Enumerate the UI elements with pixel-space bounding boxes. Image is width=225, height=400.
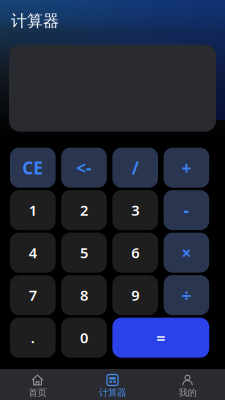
button[interactable]: 6 (112, 233, 158, 273)
button[interactable]: 3 (112, 190, 158, 230)
staticText: 7 (29, 285, 37, 305)
button[interactable]: <- (61, 148, 107, 188)
button[interactable]: + (164, 148, 209, 188)
button[interactable]: - (164, 190, 209, 230)
button[interactable]: = (112, 318, 209, 358)
staticText: 1 (29, 200, 37, 220)
button[interactable]: 7 (10, 275, 56, 315)
button[interactable]: ÷ (164, 275, 209, 315)
button[interactable]: 计算器 (75, 374, 150, 398)
staticText: 3 (131, 200, 139, 220)
staticText: <- (76, 156, 92, 179)
staticText: + (181, 156, 191, 179)
staticText: 首页 (28, 387, 46, 398)
staticText: 2 (80, 200, 88, 220)
staticText: 计算器 (99, 387, 126, 398)
button[interactable]: 1 (10, 190, 56, 230)
staticText: 5 (80, 243, 88, 262)
button[interactable]: . (10, 318, 56, 358)
staticText: / (132, 156, 139, 179)
button[interactable]: 我的 (150, 374, 225, 398)
button[interactable]: 5 (61, 233, 107, 273)
staticText: 4 (29, 243, 37, 262)
button[interactable]: 4 (10, 233, 56, 273)
button[interactable]: 0 (61, 318, 107, 358)
staticText: ÷ (181, 284, 191, 307)
button[interactable]: × (164, 233, 209, 273)
staticText: 计算器 (11, 11, 59, 31)
staticText: 9 (131, 285, 139, 305)
staticText: - (183, 199, 189, 222)
button[interactable]: 8 (61, 275, 107, 315)
button[interactable]: 首页 (0, 374, 75, 398)
staticText: CE (22, 156, 43, 179)
staticText: 6 (131, 243, 139, 262)
button[interactable]: 9 (112, 275, 158, 315)
staticText: 0 (80, 328, 88, 347)
button[interactable]: CE (10, 148, 56, 188)
staticText: × (181, 241, 191, 264)
button[interactable]: / (112, 148, 158, 188)
button[interactable]: 2 (61, 190, 107, 230)
staticText: 8 (80, 285, 88, 305)
staticText: 我的 (178, 387, 196, 398)
staticText: = (156, 327, 165, 348)
staticText: . (31, 328, 35, 347)
